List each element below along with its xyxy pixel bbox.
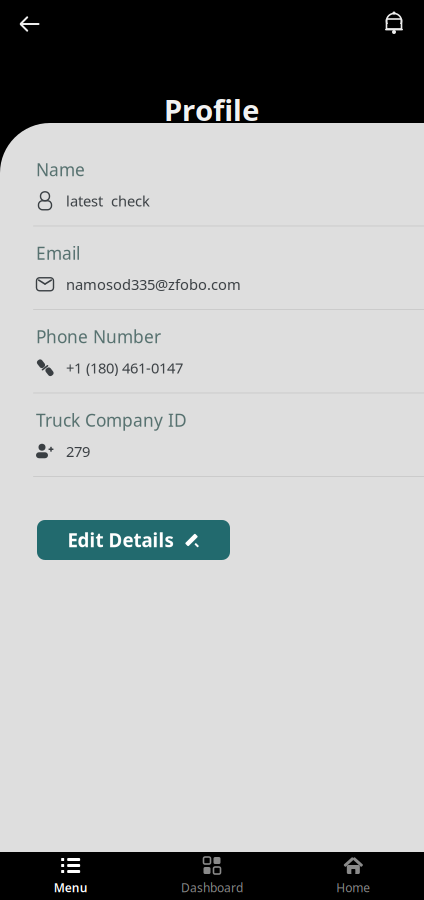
button[interactable]: Dashboard	[141, 848, 283, 900]
staticText: Name	[36, 158, 85, 181]
staticText: 279	[66, 441, 90, 461]
staticText: +1 (180) 461-0147	[66, 358, 183, 377]
staticText: Dashboard	[181, 879, 243, 895]
button[interactable]: Back	[8, 2, 52, 46]
staticText: Home	[336, 879, 370, 895]
staticText: Truck Company ID	[36, 408, 187, 431]
button[interactable]: Notifications	[372, 2, 416, 46]
staticText: latest check	[66, 191, 150, 210]
button[interactable]: Menu	[0, 848, 141, 900]
staticText: namosod335@zfobo.com	[66, 274, 241, 294]
staticText: Edit Details	[67, 528, 173, 552]
staticText: Phone Number	[36, 325, 161, 348]
staticText: Menu	[54, 879, 88, 895]
staticText: Profile	[164, 90, 260, 129]
button[interactable]: Edit Details	[37, 520, 230, 560]
button[interactable]: Home	[283, 848, 424, 900]
staticText: Email	[36, 241, 80, 264]
